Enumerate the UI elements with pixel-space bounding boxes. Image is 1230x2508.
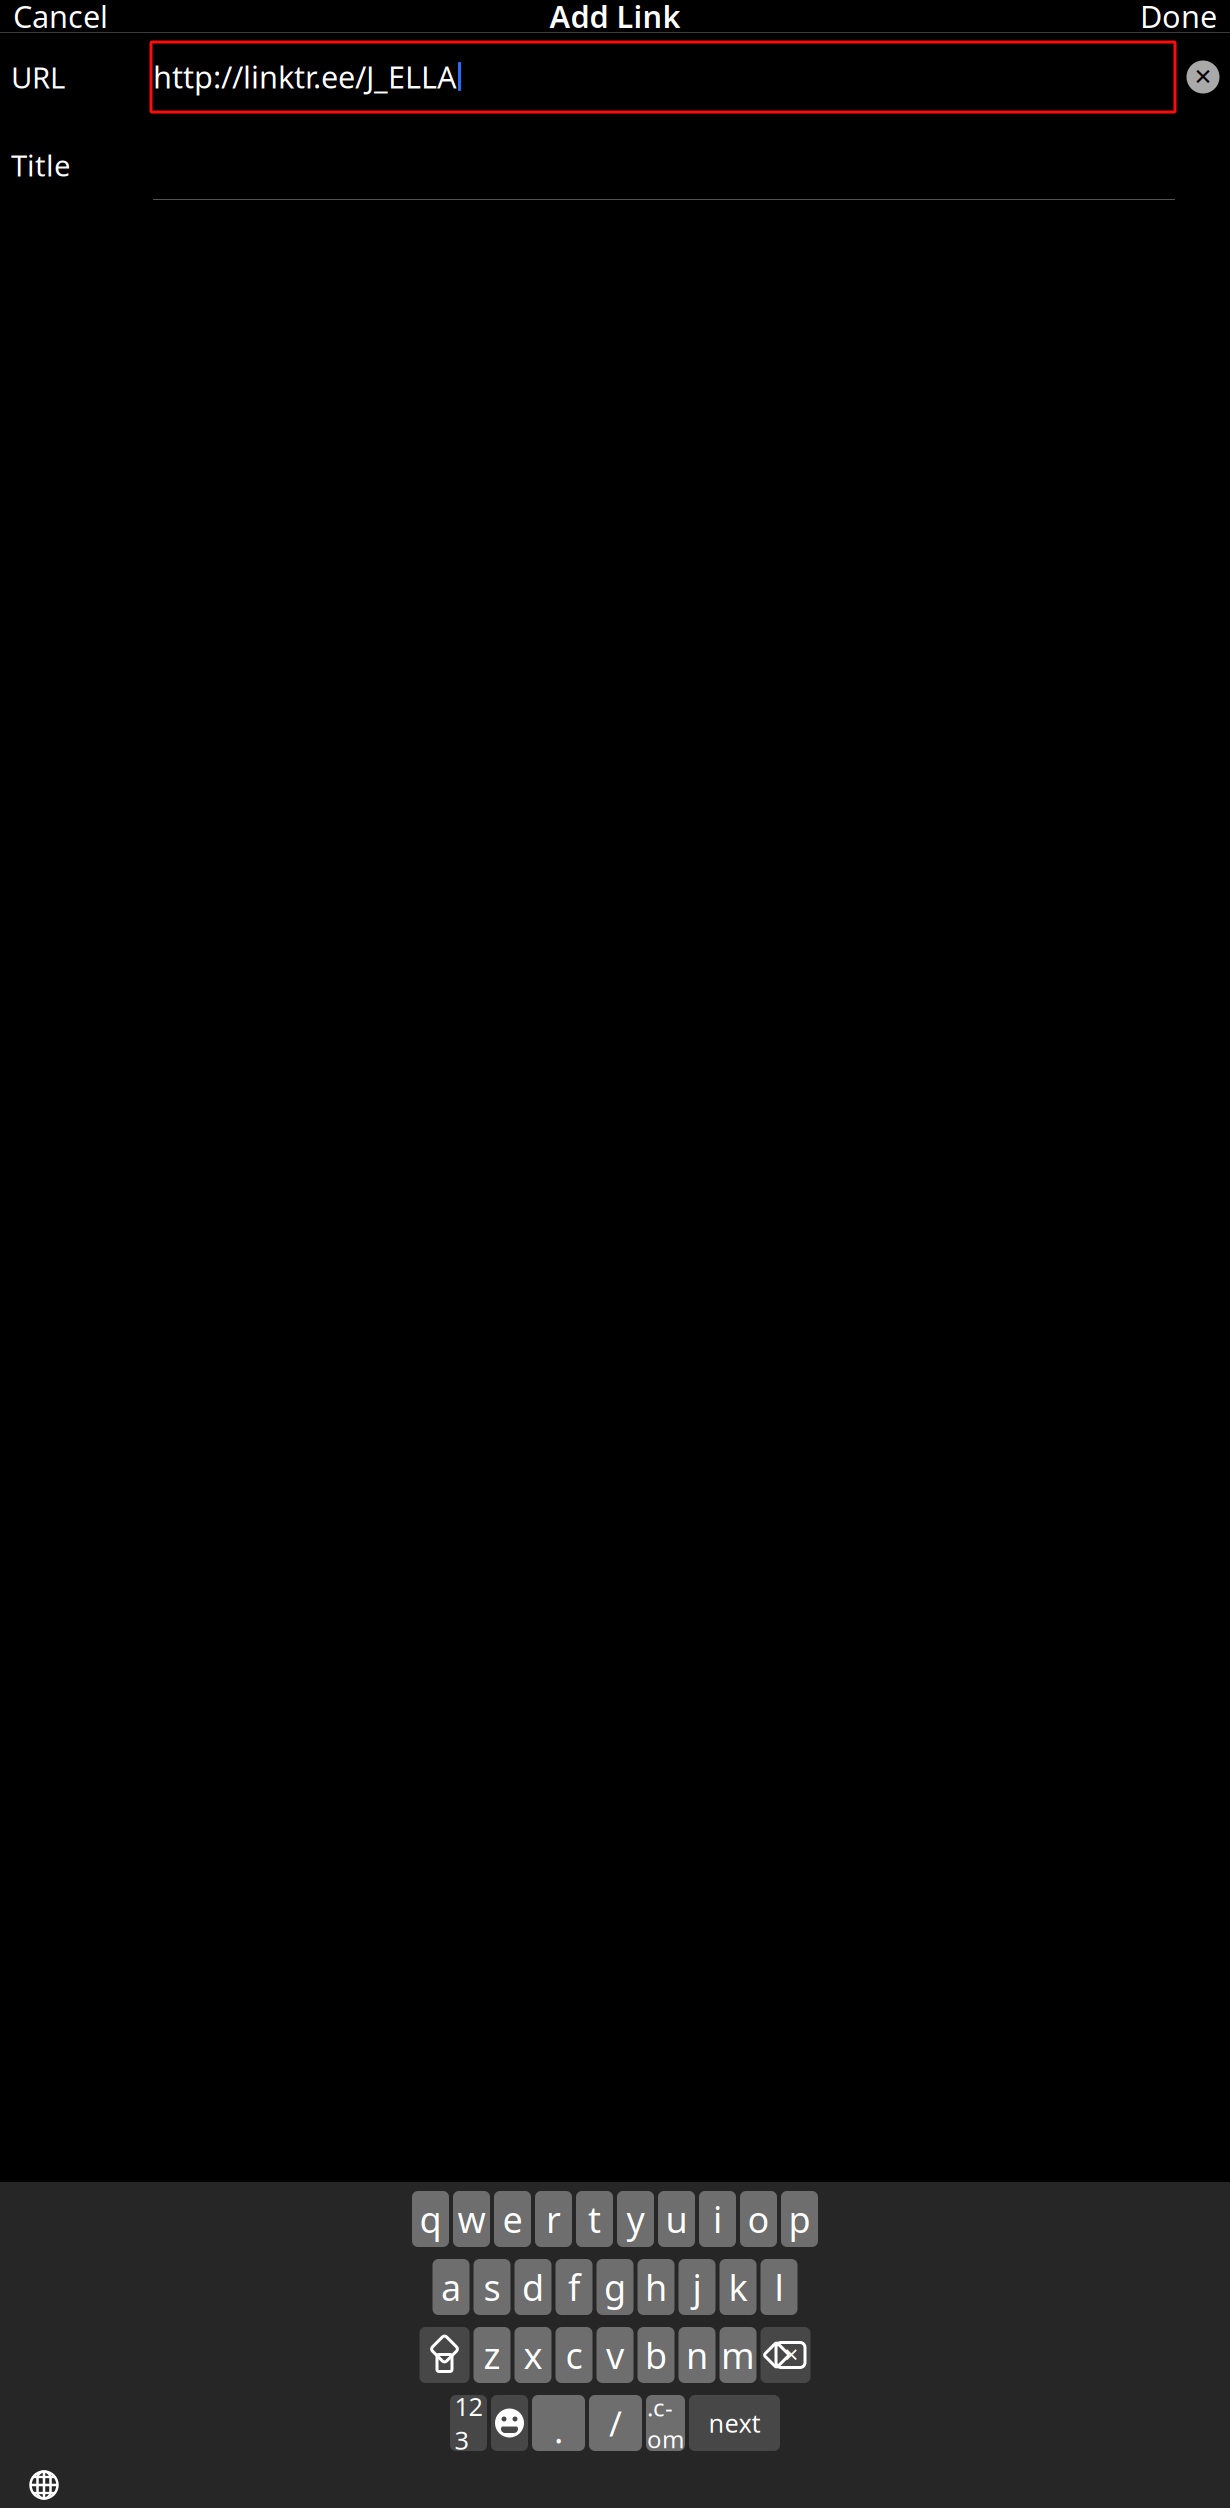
button[interactable]: s [473,2259,510,2315]
staticText: .com [647,2391,684,2455]
staticText: y [626,2195,644,2243]
button[interactable]: . [532,2395,585,2451]
button[interactable]: e [494,2191,531,2247]
button[interactable]: 123 [450,2395,487,2451]
staticText: c [565,2331,582,2379]
staticText: ✕ [783,2344,799,2366]
button[interactable]: i [699,2191,736,2247]
button[interactable]: .com [646,2395,685,2451]
staticText: v [606,2331,624,2379]
staticText: f [568,2263,580,2311]
staticText: n [686,2331,708,2379]
button[interactable]: Clear text [1179,53,1227,101]
staticText: next [708,2406,760,2440]
button[interactable]: d [514,2259,551,2315]
button[interactable]: Next keyboard [13,2461,75,2508]
staticText: s [483,2263,500,2311]
button[interactable]: u [658,2191,695,2247]
staticText: Add Link [549,0,680,36]
staticText: URL [11,57,65,96]
button[interactable]: Delete [760,2327,810,2383]
button[interactable]: n [678,2327,715,2383]
button[interactable]: q [412,2191,449,2247]
button[interactable]: l [760,2259,797,2315]
staticText: p [788,2195,810,2243]
button[interactable]: v [596,2327,633,2383]
staticText: z [483,2331,500,2379]
button[interactable]: f [555,2259,592,2315]
button[interactable]: t [576,2191,613,2247]
staticText: r [546,2195,561,2243]
button[interactable]: p [781,2191,818,2247]
staticText: http://linktr.ee/J_ELLA [153,56,457,97]
staticText: a [441,2263,461,2311]
button[interactable]: next [689,2395,780,2451]
button[interactable]: x [514,2327,551,2383]
button[interactable]: j [678,2259,715,2315]
button[interactable]: Shift [419,2327,469,2383]
staticText: d [522,2263,544,2311]
button[interactable]: k [719,2259,756,2315]
staticText: 123 [454,2389,482,2457]
staticText: b [645,2331,667,2379]
staticText: i [713,2195,722,2243]
staticText: / [609,2400,622,2446]
staticText: Title [11,145,71,184]
staticText: q [419,2195,441,2243]
button[interactable]: Cancel [2,0,119,44]
button[interactable]: b [637,2327,674,2383]
staticText: m [721,2331,755,2379]
staticText: x [523,2331,542,2379]
staticText: g [604,2263,626,2311]
staticText: l [774,2263,783,2311]
staticText: e [502,2195,522,2243]
staticText: Cancel [13,0,108,36]
button[interactable]: Emoji [491,2395,528,2451]
button[interactable]: a [432,2259,469,2315]
button[interactable]: Done [1129,0,1228,44]
button[interactable]: m [719,2327,756,2383]
button[interactable]: w [453,2191,490,2247]
staticText: ✕ [1193,64,1212,90]
staticText: t [588,2195,601,2243]
staticText: . [554,2407,563,2453]
button[interactable]: o [740,2191,777,2247]
staticText: h [645,2263,667,2311]
button[interactable]: r [535,2191,572,2247]
staticText: k [728,2263,747,2311]
staticText: j [692,2263,701,2311]
staticText: u [665,2195,687,2243]
button[interactable]: z [473,2327,510,2383]
staticText: o [747,2195,769,2243]
button[interactable]: / [589,2395,642,2451]
button[interactable]: y [617,2191,654,2247]
staticText: w [457,2195,485,2243]
button[interactable]: g [596,2259,633,2315]
button[interactable]: c [555,2327,592,2383]
button[interactable]: h [637,2259,674,2315]
staticText: Done [1140,0,1217,36]
